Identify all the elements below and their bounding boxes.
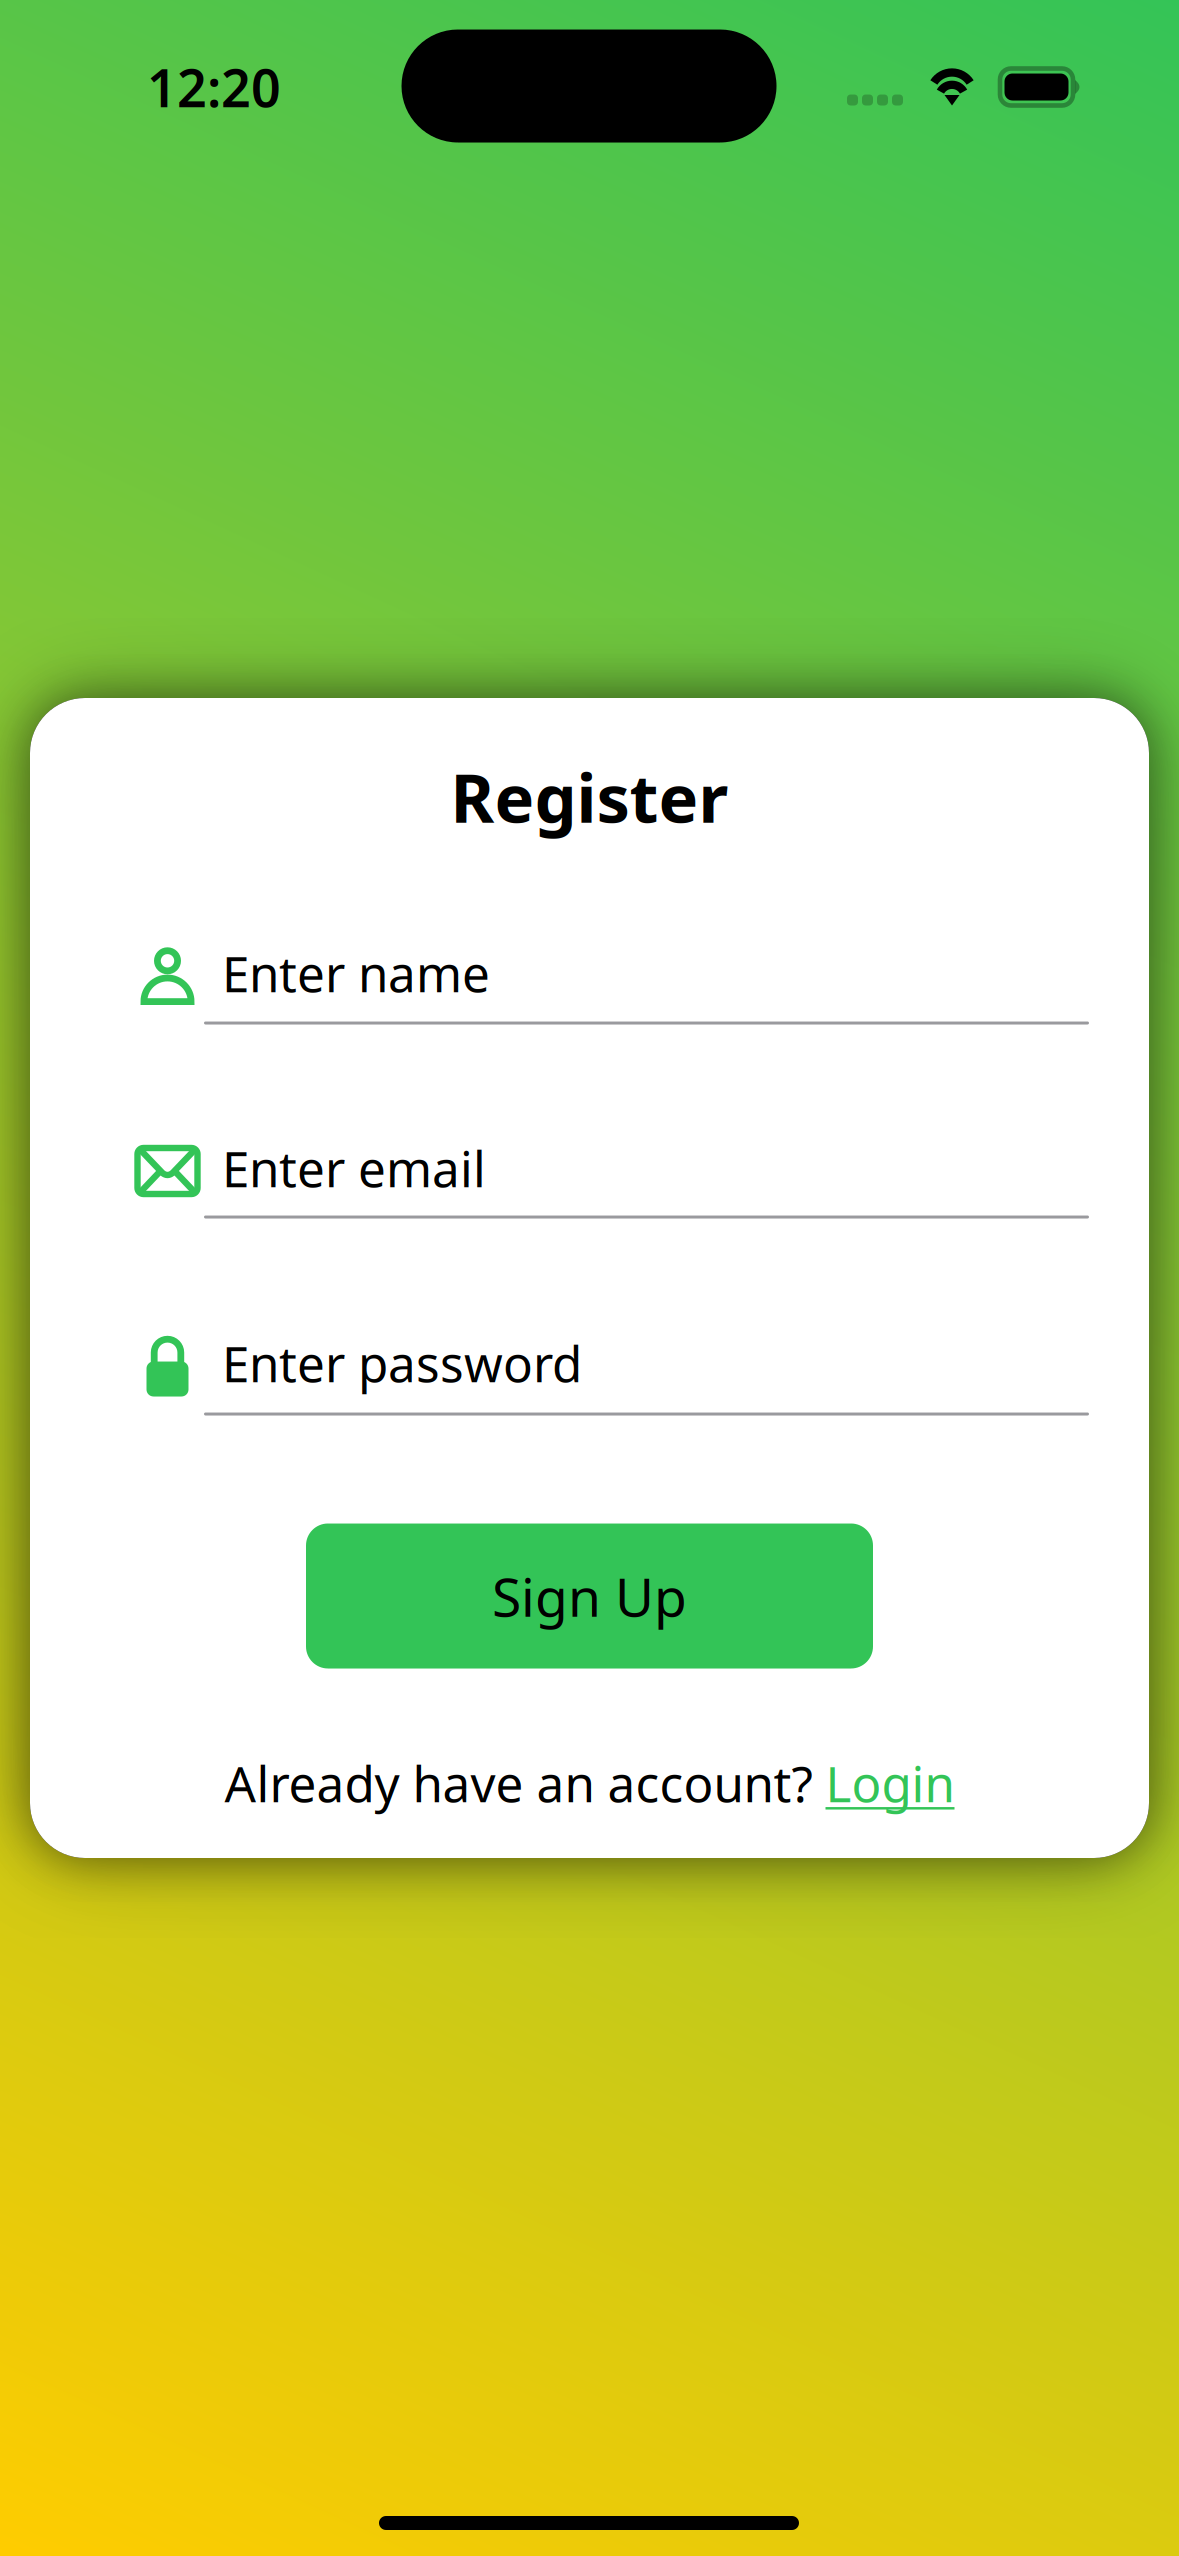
staticText: Login — [825, 1750, 954, 1816]
button[interactable]: Enter email — [30, 698, 1149, 1858]
button[interactable]: Enter password — [30, 698, 1149, 1858]
staticText: Sign Up — [492, 1561, 687, 1631]
staticText: Already have an account? — [224, 1750, 825, 1816]
button[interactable]: Enter name — [30, 698, 1149, 1858]
button[interactable]: Sign Up — [306, 1523, 873, 1668]
staticText: Enter email — [222, 1135, 486, 1201]
staticText: 12:20 — [147, 52, 281, 122]
staticText: Enter password — [222, 1330, 582, 1396]
button[interactable]: Login — [825, 1750, 954, 1816]
staticText: Enter name — [222, 940, 490, 1006]
staticText: Register — [450, 753, 728, 841]
